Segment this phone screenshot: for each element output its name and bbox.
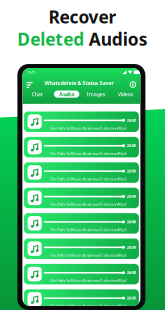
staticText: Whatsdelete & Status Saver	[44, 79, 113, 87]
button[interactable]: 24:08	[24, 162, 139, 183]
staticText: Recover	[48, 5, 116, 28]
staticText: 24:08	[127, 219, 136, 224]
staticText: 9:29	[27, 69, 34, 75]
staticText: File Path: Sd Music/Andrews/Collection/M…	[50, 202, 126, 207]
button[interactable]: 24:08	[24, 213, 139, 234]
staticText: Chat	[32, 91, 43, 98]
button[interactable]: 24:08	[24, 137, 139, 157]
staticText: 24:08	[127, 295, 136, 300]
button[interactable]: Audio	[52, 90, 81, 99]
staticText: 24:08	[127, 117, 136, 123]
staticText: Audio	[59, 91, 74, 98]
button[interactable]: 24:08	[24, 289, 139, 310]
staticText: Audios	[89, 27, 148, 50]
staticText: Videos	[118, 91, 134, 98]
staticText: File Path: Sd Music/Andrews/Collection/M…	[50, 278, 126, 283]
button[interactable]: Info	[128, 79, 138, 89]
button[interactable]: 24:08	[24, 264, 139, 284]
button[interactable]: Videos	[111, 90, 140, 99]
staticText: 24:08	[127, 270, 136, 275]
button[interactable]: 24:08	[24, 188, 139, 208]
staticText: File Path: Sd Music/Andrews/Collection/M…	[50, 151, 126, 156]
button[interactable]: 24:08	[24, 111, 139, 132]
staticText: File Path: Sd Music/Andrews/Collection/M…	[50, 125, 126, 131]
staticText: 24:08	[127, 244, 136, 250]
staticText: File Path: Sd Music/Andrews/Collection/M…	[50, 303, 126, 308]
button[interactable]: Menu	[25, 80, 35, 90]
staticText: 24:08	[127, 194, 136, 199]
staticText: Deleted	[17, 27, 84, 50]
staticText: 24:08	[127, 168, 136, 173]
button[interactable]: 24:08	[24, 238, 139, 259]
button[interactable]: Chat	[22, 90, 52, 99]
staticText: Images	[87, 91, 106, 98]
staticText: File Path: Sd Music/Andrews/Collection/M…	[50, 176, 126, 181]
staticText: File Path: Sd Music/Andrews/Collection/M…	[50, 252, 126, 258]
button[interactable]: Images	[81, 90, 111, 99]
staticText: File Path: Sd Music/Andrews/Collection/M…	[50, 227, 126, 232]
staticText: 24:08	[127, 143, 136, 148]
